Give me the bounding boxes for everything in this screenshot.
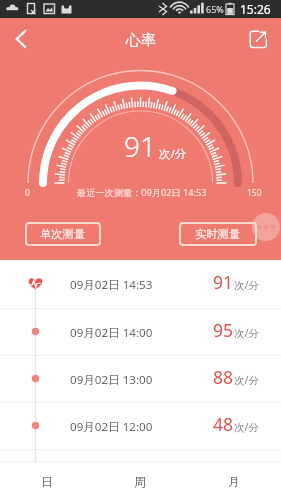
staticText: 91 — [213, 270, 234, 294]
button[interactable]: 09月02日 12:00 — [0, 402, 281, 449]
staticText: 日 — [41, 474, 53, 489]
staticText: 95 — [213, 318, 234, 342]
staticText: 09月02日 12:00 — [70, 419, 153, 435]
staticText: 次/分 — [234, 326, 259, 340]
staticText: 09月02日 13:00 — [70, 372, 153, 388]
button[interactable]: More options — [252, 213, 280, 241]
staticText: 实时测量 — [195, 227, 241, 241]
staticText: 次/分 — [234, 373, 259, 387]
button[interactable]: 09月02日 13:00 — [0, 355, 281, 402]
button[interactable]: 周 — [93, 462, 187, 500]
button[interactable]: 09月02日 14:00 — [0, 308, 281, 355]
button[interactable]: Share — [245, 20, 279, 58]
staticText: 91 — [124, 127, 156, 165]
staticText: 月 — [228, 474, 240, 489]
staticText: 0 — [25, 187, 30, 199]
staticText: 65% — [206, 3, 224, 15]
button[interactable]: 09月02日 14:53 — [0, 260, 281, 308]
staticText: 心率 — [126, 31, 156, 50]
staticText: 周 — [134, 474, 146, 489]
staticText: 88 — [213, 365, 234, 389]
staticText: 48 — [213, 412, 234, 436]
staticText: 最近一次测量：09月02日 14:53 — [77, 186, 207, 199]
staticText: 09月02日 14:53 — [70, 277, 153, 293]
staticText: 15:26 — [240, 1, 271, 17]
staticText: 次/分 — [159, 146, 187, 162]
button[interactable]: 日 — [0, 462, 93, 500]
staticText: 次/分 — [234, 420, 259, 434]
staticText: 次/分 — [234, 278, 259, 292]
button[interactable]: 单次测量 — [25, 222, 101, 246]
staticText: 09月02日 14:00 — [70, 325, 153, 341]
staticText: 单次测量 — [40, 227, 86, 241]
staticText: 150 — [247, 187, 262, 199]
button[interactable]: 实时测量 — [179, 222, 257, 246]
button[interactable]: Back — [4, 20, 38, 58]
button[interactable]: 月 — [187, 462, 281, 500]
